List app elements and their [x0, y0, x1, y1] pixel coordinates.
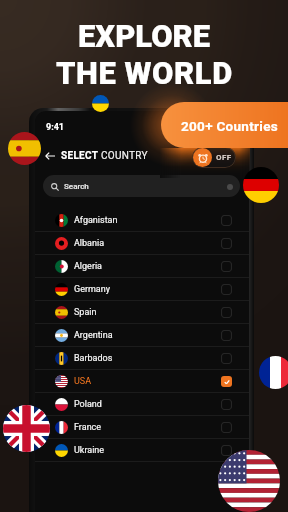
staticText: 9:41	[46, 122, 65, 133]
button[interactable]: Poland	[55, 393, 232, 415]
button[interactable]: Select France	[221, 422, 232, 433]
button[interactable]: 200+ Countries	[161, 102, 288, 148]
button[interactable]: Select Ukraine	[221, 445, 232, 456]
staticText: Search	[64, 182, 89, 191]
button[interactable]: Select Albania	[221, 238, 232, 249]
staticText: Germany	[74, 284, 110, 295]
button[interactable]: Algeria	[55, 255, 232, 277]
button[interactable]: Select Argentina	[221, 330, 232, 341]
button[interactable]: USA	[55, 370, 232, 392]
button[interactable]: Select Spain	[221, 307, 232, 318]
button[interactable]: France	[55, 416, 232, 438]
staticText: Algeria	[74, 261, 103, 272]
staticText: Argentina	[74, 330, 113, 341]
staticText: 200+ Countries	[181, 118, 279, 134]
staticText: France	[74, 422, 102, 433]
button[interactable]: Select Algeria	[221, 261, 232, 272]
button[interactable]: Alarm toggle off	[192, 147, 236, 168]
button[interactable]: Albania	[55, 232, 232, 254]
staticText: SELECT	[61, 150, 101, 162]
button[interactable]: Select Poland	[221, 399, 232, 410]
staticText: Poland	[74, 399, 102, 410]
button[interactable]: Search	[43, 175, 240, 197]
button[interactable]: Select Afganistan	[221, 215, 232, 226]
staticText: EXPLORE	[78, 18, 211, 54]
staticText: COUNTRY	[101, 150, 148, 162]
button[interactable]: Ukraine	[55, 439, 232, 461]
button[interactable]: Back	[41, 147, 59, 165]
staticText: USA	[74, 376, 92, 387]
button[interactable]: Spain	[55, 301, 232, 323]
staticText: Barbados	[74, 353, 113, 364]
button[interactable]: Barbados	[55, 347, 232, 369]
button[interactable]: Select USA	[221, 376, 232, 387]
staticText: Ukraine	[74, 445, 105, 456]
staticText: Spain	[74, 307, 97, 318]
staticText: THE WORLD	[56, 55, 233, 91]
staticText: OFF	[216, 153, 232, 162]
button[interactable]: Argentina	[55, 324, 232, 346]
staticText: Albania	[74, 238, 105, 249]
button[interactable]: Germany	[55, 278, 232, 300]
button[interactable]: Afganistan	[55, 209, 232, 231]
button[interactable]: Select Germany	[221, 284, 232, 295]
button[interactable]: Select Barbados	[221, 353, 232, 364]
staticText: Afganistan	[74, 215, 118, 226]
